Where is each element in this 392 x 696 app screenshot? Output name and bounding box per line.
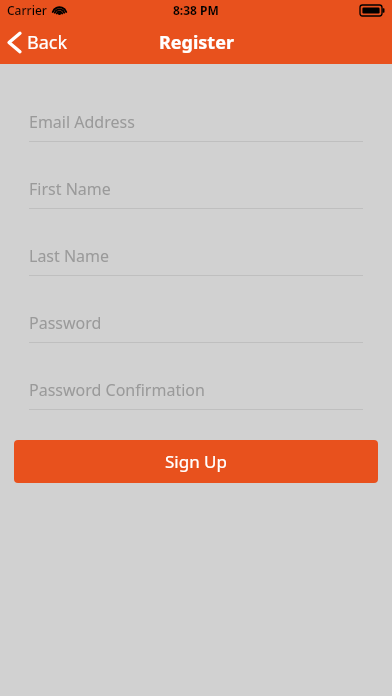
button[interactable]: Sign Up [14,440,378,483]
button[interactable]: Password [29,304,363,342]
staticText: First Name [29,178,111,200]
button[interactable]: Last Name [29,237,363,275]
button[interactable]: Email Address [29,103,363,141]
staticText: Password [29,312,102,334]
staticText: Sign Up [165,450,227,473]
staticText: Password Confirmation [29,379,205,401]
staticText: Last Name [29,245,110,267]
staticText: Email Address [29,111,135,133]
button[interactable]: Password Confirmation [29,371,363,409]
staticText: Register [159,30,234,55]
button[interactable]: First Name [29,170,363,208]
button[interactable]: Back [0,24,80,61]
staticText: Back [27,30,68,55]
staticText: 8:38 PM [173,2,219,18]
staticText: Carrier [7,2,47,18]
